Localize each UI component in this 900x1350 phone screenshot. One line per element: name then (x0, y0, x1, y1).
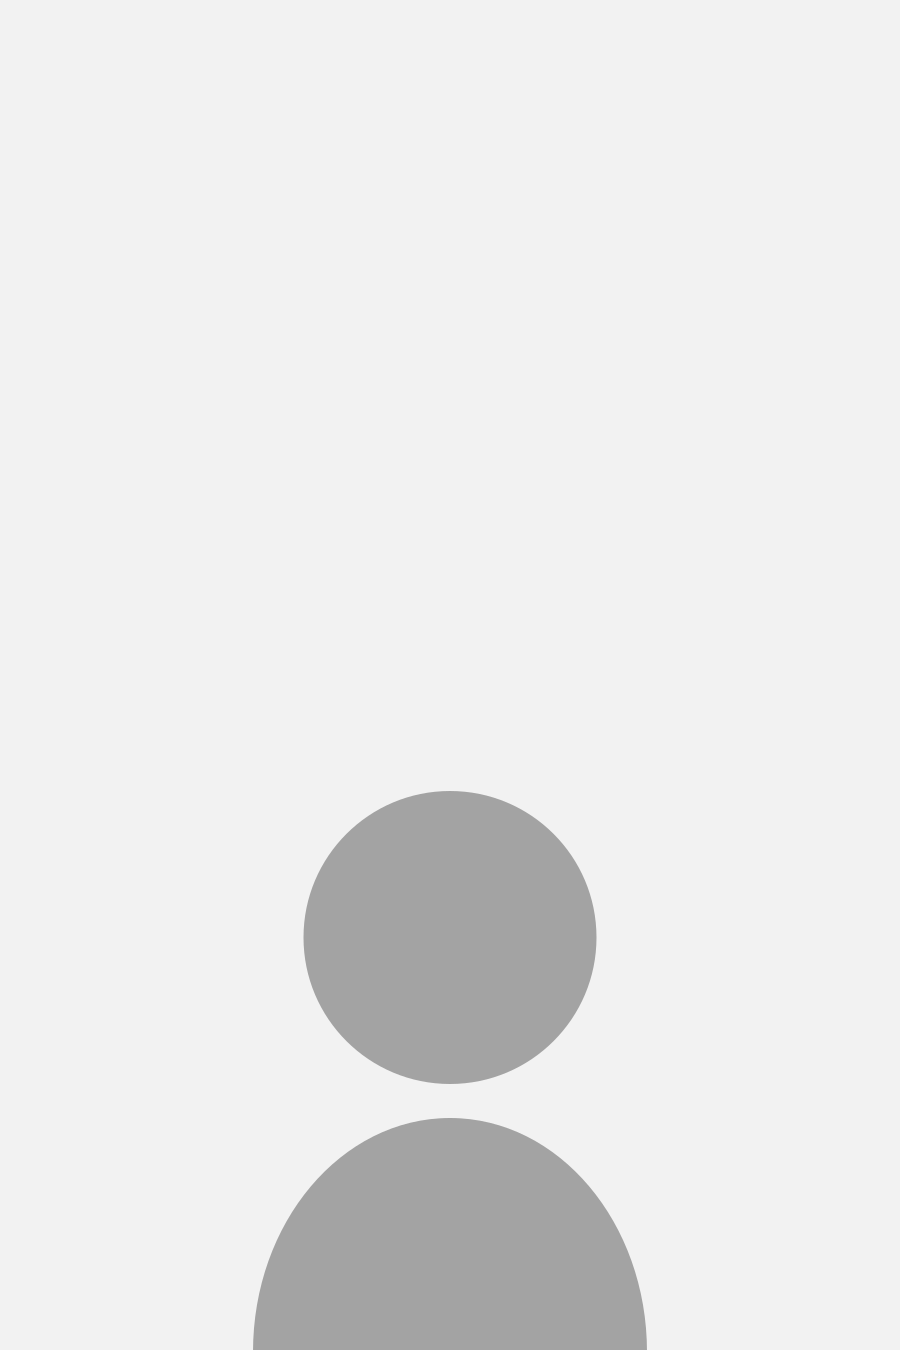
button[interactable]: Profile photo placeholder (0, 0, 900, 1350)
